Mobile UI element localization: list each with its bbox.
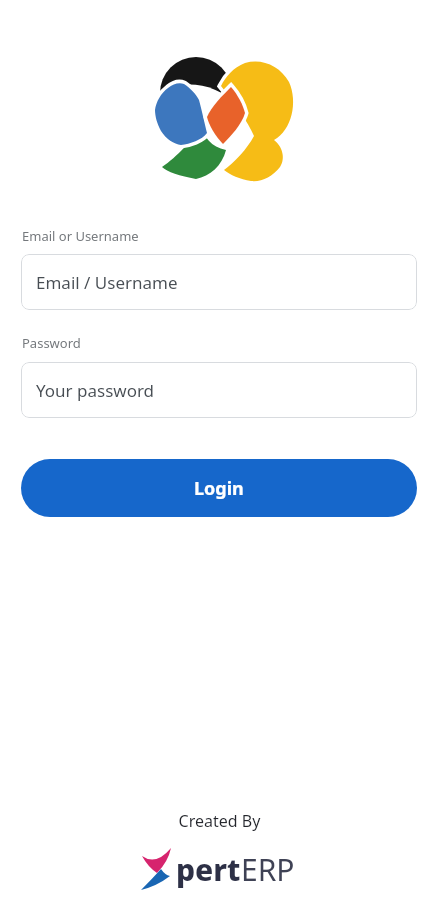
button[interactable]: Login	[21, 459, 417, 517]
staticText: Created By	[0, 810, 439, 832]
staticText: Email or Username	[22, 227, 139, 245]
staticText: Password	[22, 334, 81, 352]
staticText: ERP	[241, 849, 295, 890]
staticText: Login	[194, 476, 244, 501]
staticText: pert	[176, 849, 241, 890]
button[interactable]: Your password	[21, 362, 417, 418]
staticText: Email / Username	[36, 271, 178, 294]
button[interactable]: Email / Username	[21, 254, 417, 310]
staticText: Your password	[36, 379, 155, 402]
